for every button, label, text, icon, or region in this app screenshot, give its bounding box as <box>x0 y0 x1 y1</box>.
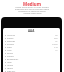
staticText: Profile <box>7 37 14 40</box>
staticText: Medium <box>23 1 41 7</box>
staticText: Stories <box>7 55 14 58</box>
staticText: Terms <box>7 67 14 70</box>
staticText: Sign out <box>7 70 16 72</box>
staticText: Public <box>52 43 58 46</box>
staticText: On <box>55 34 58 37</box>
staticText: magna aliqua enim <box>23 12 42 15</box>
button[interactable]: Bookmarks <box>3 58 60 61</box>
staticText: Privacy <box>7 43 14 46</box>
button[interactable]: About <box>3 64 60 67</box>
button[interactable]: Terms <box>3 67 60 70</box>
button[interactable]: Settings <box>3 40 60 43</box>
button[interactable]: AAA <box>3 28 60 34</box>
staticText: incididunt ut labore et dolore <box>18 10 46 13</box>
staticText: Drafts <box>7 52 14 55</box>
staticText: About <box>7 64 13 67</box>
staticText: 2.4k <box>54 46 58 49</box>
staticText: Account <box>7 34 15 37</box>
button[interactable]: Lists <box>3 49 60 52</box>
staticText: Stats <box>7 46 12 49</box>
staticText: Bookmarks <box>7 58 19 61</box>
button[interactable]: Sign out <box>3 70 60 72</box>
staticText: Settings <box>7 40 15 43</box>
button[interactable]: Account <box>3 34 60 37</box>
button[interactable]: Help <box>3 61 60 64</box>
staticText: Lorem ipsum dolor sit amet consect <box>15 6 49 9</box>
button[interactable]: Stats <box>3 46 60 49</box>
button[interactable]: Profile <box>3 37 60 40</box>
staticText: Help <box>7 61 12 64</box>
staticText: AAA <box>28 29 35 33</box>
button[interactable]: Drafts <box>3 52 60 55</box>
button[interactable]: Privacy <box>3 43 60 46</box>
staticText: All <box>55 40 58 43</box>
staticText: Lists <box>7 49 12 52</box>
staticText: 12 <box>55 49 58 52</box>
staticText: Edit <box>54 37 58 40</box>
button[interactable]: Stories <box>3 55 60 58</box>
staticText: adipiscing elit sed do eiusmod temp <box>15 8 49 11</box>
